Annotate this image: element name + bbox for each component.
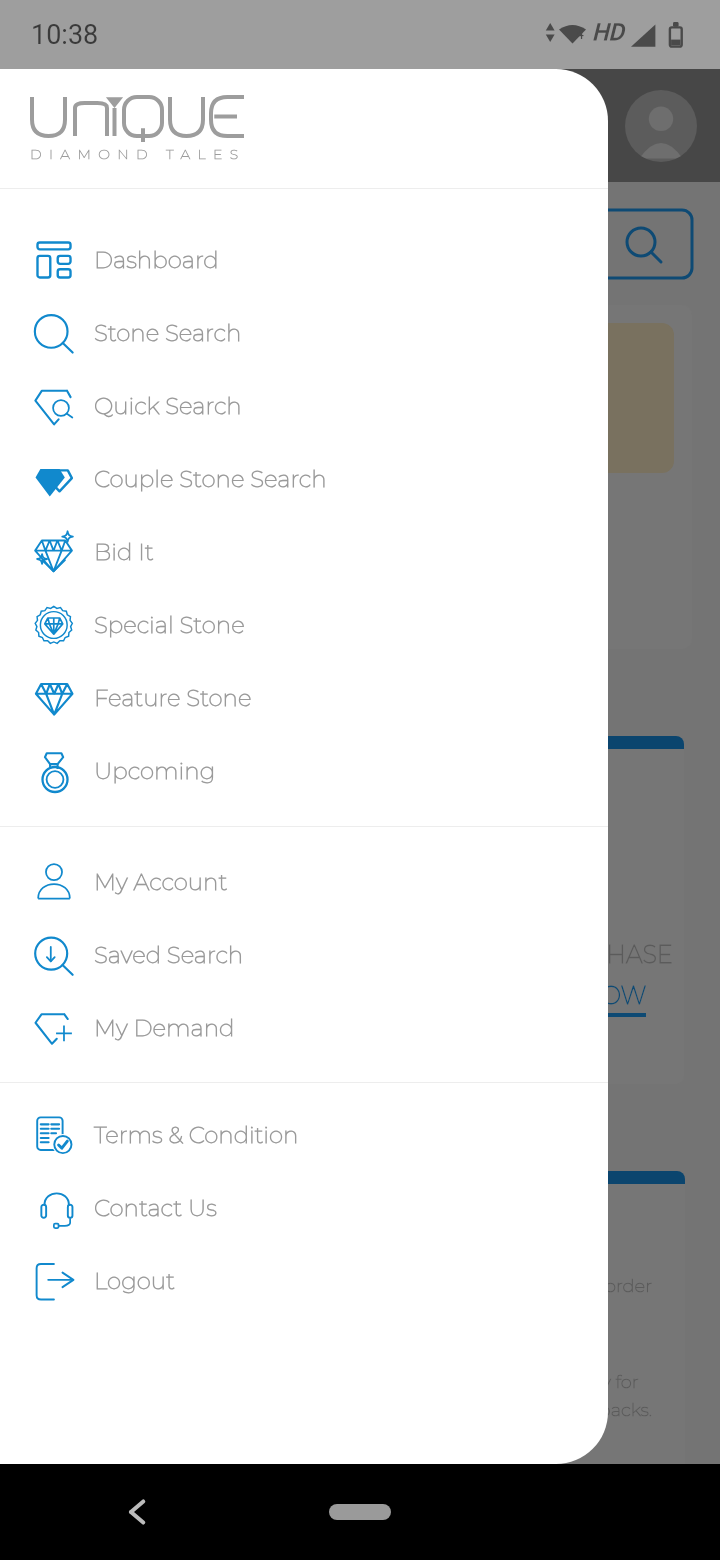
staticText: Saved Search	[94, 941, 244, 969]
button[interactable]: Saved Search	[0, 918, 608, 991]
button[interactable]: Quick Search	[0, 369, 608, 442]
staticText: Stone Search	[94, 319, 242, 347]
staticText: Quick Search	[94, 392, 242, 420]
staticText: My Demand	[94, 1014, 235, 1042]
staticText: Special Stone	[94, 611, 245, 639]
button[interactable]: Contact Us	[0, 1171, 608, 1244]
button[interactable]: My Demand	[0, 991, 608, 1064]
staticText: Logout	[94, 1267, 175, 1295]
staticText: Dashboard	[94, 246, 219, 274]
button[interactable]: Dashboard	[0, 223, 608, 296]
staticText: your suggestions & feedbacks.	[390, 1399, 653, 1421]
staticText: Bid It	[94, 538, 154, 566]
button[interactable]: Upcoming	[0, 734, 608, 807]
button[interactable]: Home	[329, 1504, 391, 1520]
staticText: HD	[592, 19, 624, 46]
staticText: BUY NOW	[524, 981, 647, 1010]
button[interactable]: Special Stone	[0, 588, 608, 661]
staticText: Special Deal	[64, 381, 231, 415]
staticText: 4	[576, 26, 584, 42]
button[interactable]: My Account	[0, 845, 608, 918]
button[interactable]: Terms & Condition	[0, 1098, 608, 1171]
button[interactable]: Back	[116, 1490, 160, 1534]
button[interactable]: Logout	[0, 1244, 608, 1317]
staticText: Feature Stone	[94, 684, 252, 712]
staticText: Upcoming	[94, 757, 216, 785]
button[interactable]: Couple Stone Search	[0, 442, 608, 515]
staticText: Contact Us	[94, 1194, 217, 1222]
staticText: We are always friendly for	[419, 1371, 639, 1393]
button[interactable]: Bid It	[0, 515, 608, 588]
staticText: Couple Stone Search	[94, 465, 327, 493]
staticText: Terms & Condition	[94, 1121, 299, 1149]
staticText: 10:38	[31, 19, 99, 51]
staticText: EXCLUSIVE PURCHASE	[398, 940, 673, 969]
staticText: Easy and quick way to place order	[357, 1275, 653, 1297]
button[interactable]: Stone Search	[0, 296, 608, 369]
button[interactable]: Feature Stone	[0, 661, 608, 734]
staticText: DIAMOND TALES	[30, 145, 246, 162]
staticText: My Account	[94, 868, 228, 896]
